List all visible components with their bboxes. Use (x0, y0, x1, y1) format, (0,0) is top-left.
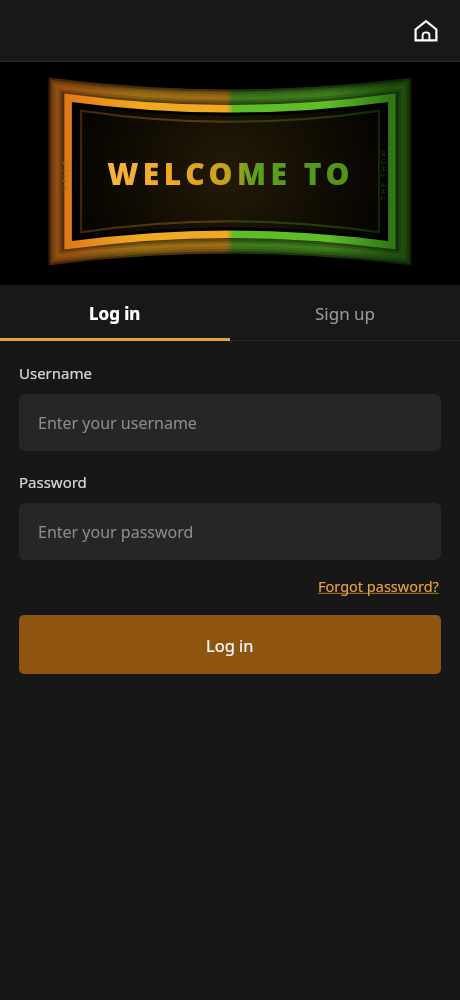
staticText: HELLO (61, 158, 71, 190)
staticText: Enter your username (38, 412, 197, 434)
staticText: Log in (206, 634, 254, 656)
button[interactable]: Home (404, 9, 448, 53)
staticText: Forgot password? (318, 576, 439, 596)
staticText: Enter your password (38, 521, 194, 543)
button[interactable]: Log in (19, 615, 441, 674)
staticText: Log in (89, 302, 141, 325)
staticText: THE SHOW (379, 148, 389, 200)
button[interactable]: Sign up (230, 285, 460, 341)
staticText: Password (19, 472, 87, 492)
staticText: Username (19, 363, 92, 383)
button[interactable]: Forgot password? (316, 573, 441, 599)
button[interactable]: Enter your username (19, 394, 441, 451)
button[interactable]: Enter your password (19, 503, 441, 560)
staticText: WELCOME TO (107, 153, 354, 194)
staticText: Sign up (315, 302, 376, 325)
button[interactable]: Log in (0, 285, 230, 341)
